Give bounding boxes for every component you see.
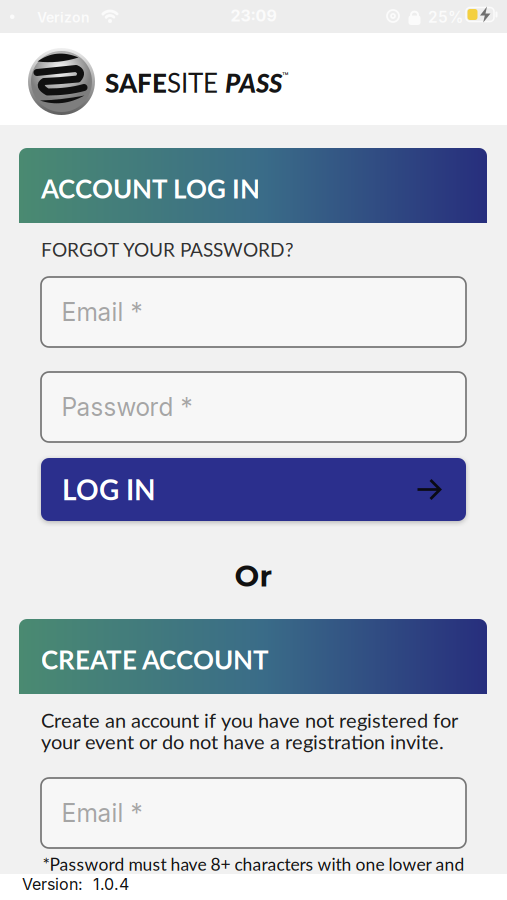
staticText: Create an account if you have not regist… — [41, 708, 458, 732]
staticText: Version: 1.0.4 — [22, 874, 129, 894]
button[interactable]: FORGOT YOUR PASSWORD? — [41, 238, 294, 261]
staticText: Password * — [61, 392, 192, 422]
staticText: ™ — [282, 70, 289, 83]
staticText: ACCOUNT LOG IN — [41, 173, 260, 204]
staticText: SAFE — [105, 67, 167, 98]
staticText: LOG IN — [62, 473, 156, 506]
staticText: PASS — [225, 67, 282, 98]
staticText: Or — [234, 558, 272, 594]
button[interactable]: Password * — [41, 372, 466, 442]
staticText: Email * — [61, 297, 142, 327]
button[interactable]: Email * — [41, 277, 466, 347]
staticText: SITE — [167, 67, 218, 98]
button[interactable]: Email * — [41, 778, 466, 848]
staticText: your event or do not have a registration… — [41, 729, 444, 753]
staticText: *Password must have 8+ characters with o… — [42, 853, 464, 874]
staticText: Email * — [61, 798, 142, 828]
staticText: Verizon — [37, 9, 90, 26]
staticText: 25% — [428, 8, 463, 27]
button[interactable]: LOG IN — [41, 458, 466, 521]
staticText: 23:09 — [230, 6, 276, 25]
staticText: CREATE ACCOUNT — [41, 644, 269, 675]
staticText: FORGOT YOUR PASSWORD? — [41, 238, 294, 261]
